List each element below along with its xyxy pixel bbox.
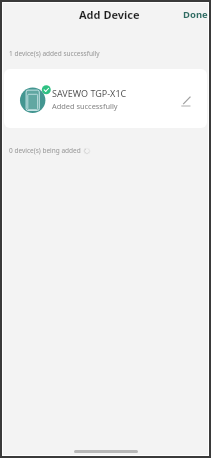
- staticText: Added successfully: [52, 101, 118, 111]
- staticText: SAVEWO TGP-X1C: [52, 87, 127, 99]
- staticText: Done: [183, 8, 208, 21]
- button[interactable]: Rename device: [177, 91, 195, 109]
- staticText: 0 device(s) being added: [9, 146, 81, 155]
- staticText: 1 device(s) added successfully: [9, 49, 100, 58]
- staticText: Add Device: [79, 7, 140, 22]
- button[interactable]: SAVEWO TGP-X1C: [4, 69, 207, 128]
- button[interactable]: Done: [177, 3, 208, 26]
